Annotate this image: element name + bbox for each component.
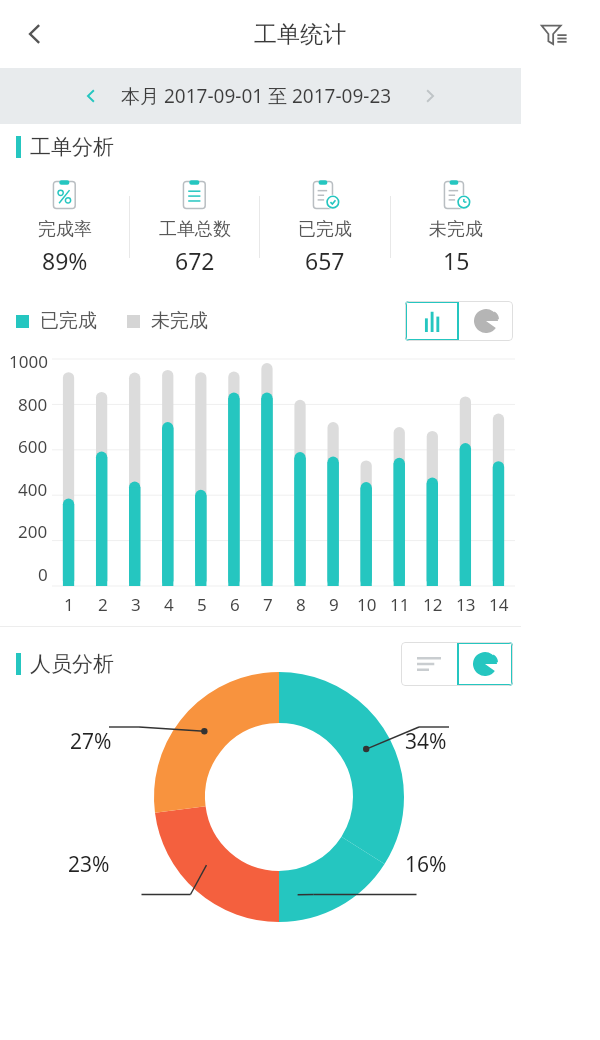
button[interactable]: Bar chart view bbox=[405, 301, 459, 341]
staticText: 工单分析 bbox=[30, 134, 114, 160]
button[interactable]: Pie chart view bbox=[459, 301, 513, 341]
staticText: 23% bbox=[68, 850, 110, 879]
button[interactable]: 工单总数 bbox=[130, 168, 259, 286]
staticText: 15 bbox=[443, 245, 470, 276]
staticText: 12 bbox=[423, 593, 443, 616]
staticText: 3 bbox=[131, 593, 141, 616]
staticText: 11 bbox=[390, 593, 410, 616]
staticText: 7 bbox=[263, 593, 273, 616]
staticText: 2 bbox=[98, 593, 108, 616]
staticText: 400 bbox=[18, 478, 48, 501]
staticText: 完成率 bbox=[38, 218, 92, 241]
staticText: 0 bbox=[38, 563, 48, 586]
button[interactable]: Back bbox=[8, 7, 62, 61]
staticText: 本月 2017-09-01 至 2017-09-23 bbox=[121, 83, 392, 109]
staticText: 9 bbox=[329, 593, 339, 616]
staticText: 800 bbox=[18, 393, 48, 416]
staticText: 10 bbox=[357, 593, 377, 616]
button[interactable]: 已完成 bbox=[260, 168, 390, 286]
staticText: 657 bbox=[305, 245, 345, 276]
staticText: 工单统计 bbox=[254, 20, 346, 49]
staticText: 工单总数 bbox=[159, 218, 231, 241]
button[interactable]: List view bbox=[401, 642, 457, 686]
staticText: 已完成 bbox=[40, 309, 97, 333]
staticText: 8 bbox=[296, 593, 306, 616]
staticText: 13 bbox=[456, 593, 476, 616]
staticText: 5 bbox=[197, 593, 207, 616]
staticText: 1000 bbox=[9, 350, 48, 373]
staticText: 27% bbox=[70, 727, 112, 756]
staticText: 1 bbox=[64, 593, 74, 616]
staticText: 人员分析 bbox=[30, 651, 114, 677]
staticText: 600 bbox=[18, 435, 48, 458]
button[interactable]: Pie chart view bbox=[457, 642, 513, 686]
staticText: 未完成 bbox=[429, 218, 483, 241]
staticText: 已完成 bbox=[298, 218, 352, 241]
staticText: 6 bbox=[230, 593, 240, 616]
staticText: 89% bbox=[42, 245, 88, 276]
staticText: 未完成 bbox=[151, 309, 208, 333]
staticText: 16% bbox=[405, 850, 447, 879]
button[interactable]: 完成率 bbox=[0, 168, 129, 286]
button[interactable]: 未完成 bbox=[391, 168, 521, 286]
staticText: 200 bbox=[18, 520, 48, 543]
button[interactable]: Filter bbox=[530, 10, 578, 58]
staticText: 4 bbox=[164, 593, 174, 616]
staticText: 14 bbox=[489, 593, 509, 616]
staticText: 34% bbox=[405, 727, 447, 756]
button[interactable]: Previous period bbox=[71, 76, 111, 116]
button[interactable]: Next period bbox=[410, 76, 450, 116]
staticText: 672 bbox=[175, 245, 215, 276]
